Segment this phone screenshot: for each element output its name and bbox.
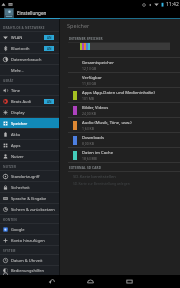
button[interactable]: Bedienungshilfen	[0, 266, 59, 275]
button[interactable]: Google	[0, 224, 59, 234]
button[interactable]: Audio (Musik, Töne, usw.)	[60, 118, 180, 132]
button[interactable]: Recent apps	[125, 277, 134, 286]
staticText: Bluetooth	[11, 46, 30, 51]
button[interactable]: Downloads	[60, 133, 180, 147]
button[interactable]: AN	[44, 46, 54, 51]
staticText: Daten im Cache	[82, 150, 113, 156]
staticText: SD-Karte bereitstellen	[73, 174, 116, 180]
button[interactable]: WLAN	[0, 32, 59, 42]
staticText: DRAHTLOS & NETZWERKE	[3, 26, 45, 30]
button[interactable]: Bilder, Videos	[60, 103, 180, 117]
button[interactable]: Speicher	[0, 118, 59, 128]
button[interactable]: Verfügbar	[60, 73, 180, 87]
staticText: 101 MB	[82, 96, 94, 101]
staticText: AN	[47, 47, 52, 51]
button[interactable]: Standortzugriff	[0, 171, 59, 181]
staticText: SYSTEM	[3, 249, 16, 253]
staticText: Google	[11, 227, 25, 232]
button[interactable]: AN	[44, 99, 54, 104]
staticText: WLAN	[11, 35, 23, 40]
staticText: Speicher	[11, 121, 28, 126]
staticText: Datum & Uhrzeit	[11, 258, 43, 263]
staticText: AN	[47, 100, 52, 104]
staticText: Downloads	[82, 135, 104, 141]
staticText: Einstellungen	[17, 10, 47, 16]
button[interactable]: Datum & Uhrzeit	[0, 255, 59, 265]
button[interactable]: AN	[44, 35, 54, 40]
staticText: Beats Audi	[11, 99, 32, 104]
staticText: Bedienungshilfen	[11, 268, 45, 273]
button[interactable]: Beats Audi	[0, 96, 59, 106]
button[interactable]: Sprache & Eingabe	[0, 193, 59, 203]
staticText: Audio (Musik, Töne, usw.)	[82, 120, 132, 126]
staticText: Apps (App-Daten und Medieninhalte)	[82, 90, 155, 96]
button[interactable]: Bluetooth	[0, 43, 59, 53]
staticText: AN	[47, 36, 52, 40]
button[interactable]: Display	[0, 107, 59, 117]
button[interactable]: Konto hinzufügen	[0, 235, 59, 245]
staticText: 8,00 KB	[82, 141, 94, 146]
staticText: Nutzer	[11, 154, 24, 159]
staticText: INTERNER SPEICHER	[69, 37, 103, 41]
staticText: Sprache & Eingabe	[11, 196, 47, 201]
staticText: Töne	[11, 88, 21, 93]
staticText: Akku	[11, 132, 21, 137]
staticText: Speicher	[67, 22, 90, 29]
staticText: 12,13 GB	[82, 66, 97, 71]
button[interactable]: Daten im Cache	[60, 148, 180, 162]
button[interactable]: Apps	[0, 140, 59, 150]
staticText: Konto hinzufügen	[11, 238, 45, 243]
staticText: Mehr...	[11, 68, 24, 73]
button[interactable]: Sicherheit	[0, 182, 59, 192]
button[interactable]: Einstellungen	[0, 8, 180, 18]
staticText: 11:42	[166, 1, 179, 8]
staticText: Apps	[11, 143, 21, 148]
staticText: 24,00 KB	[82, 111, 96, 116]
button[interactable]: Akku	[0, 129, 59, 139]
button[interactable]: Gesamtspeicher	[60, 58, 180, 72]
staticText: Display	[11, 110, 25, 115]
staticText: Bilder, Videos	[82, 105, 109, 111]
staticText: 18,63 MB	[82, 156, 97, 161]
staticText: 11,83 GB	[82, 81, 97, 86]
staticText: Verfügbar	[82, 75, 102, 81]
button[interactable]: Mehr...	[0, 65, 59, 75]
staticText: Sicherheit	[11, 185, 30, 190]
button[interactable]: Töne	[0, 85, 59, 95]
staticText: 1,63 KB	[82, 126, 94, 131]
button[interactable]: Datenverbrauch	[0, 54, 59, 64]
staticText: Gesamtspeicher	[82, 60, 114, 66]
staticText: GERÄT	[3, 79, 14, 83]
button[interactable]: Back	[47, 277, 56, 286]
button[interactable]: SD-Karte bereitstellen	[60, 172, 180, 186]
staticText: Standortzugriff	[11, 174, 40, 179]
staticText: Sichern & zurücksetzen	[11, 207, 55, 212]
staticText: KONTEN	[3, 218, 17, 222]
button[interactable]: Nutzer	[0, 151, 59, 161]
staticText: NUTZER	[3, 165, 17, 169]
staticText: SD-Karte zur Bereitstellung anlegen	[73, 181, 130, 186]
button[interactable]: Sichern & zurücksetzen	[0, 204, 59, 214]
button[interactable]: Apps (App-Daten und Medieninhalte)	[60, 88, 180, 102]
staticText: Datenverbrauch	[11, 57, 42, 62]
button[interactable]: Home	[86, 277, 95, 286]
staticText: EXTERNAL SD CARD	[69, 166, 102, 170]
